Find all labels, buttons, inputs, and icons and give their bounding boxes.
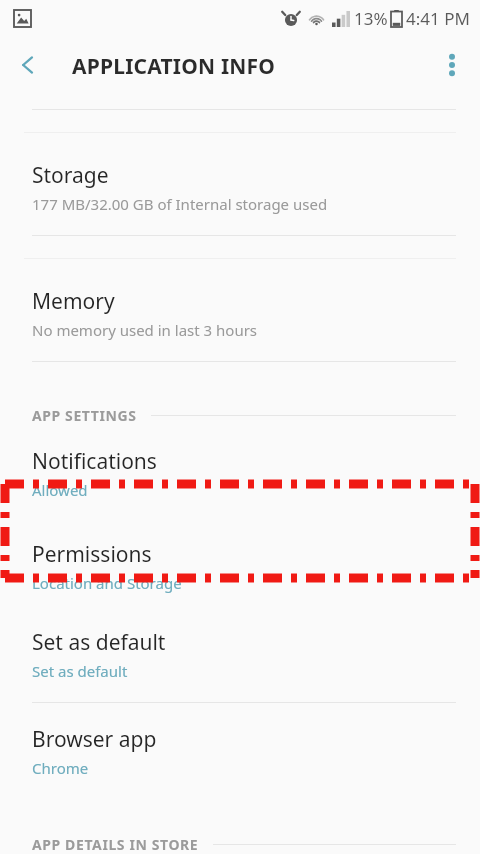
staticText: Permissions (32, 540, 152, 569)
staticText: Browser app (32, 725, 157, 754)
staticText: APPLICATION INFO (72, 52, 276, 81)
button[interactable]: Navigate up (0, 37, 56, 93)
button[interactable]: Notifications (0, 447, 480, 522)
button[interactable]: Permissions (0, 522, 480, 614)
staticText: 177 MB/32.00 GB of Internal storage used (32, 194, 328, 214)
button[interactable]: Browser app (0, 703, 480, 799)
staticText: 13% (354, 7, 388, 30)
staticText: Set as default (32, 628, 166, 657)
button[interactable]: Set as default (0, 614, 480, 702)
staticText: Set as default (32, 661, 128, 681)
staticText: Storage (32, 161, 109, 190)
staticText: Notifications (32, 447, 157, 476)
button[interactable]: Storage (0, 133, 480, 235)
staticText: Chrome (32, 758, 89, 778)
staticText: Memory (32, 287, 115, 316)
staticText: 4:41 PM (406, 7, 470, 30)
staticText: APP DETAILS IN STORE (32, 835, 199, 854)
staticText: No memory used in last 3 hours (32, 320, 258, 340)
staticText: Allowed (32, 480, 88, 500)
staticText: APP SETTINGS (32, 406, 137, 425)
button[interactable]: Memory (0, 259, 480, 361)
staticText: Location and Storage (32, 573, 182, 593)
button[interactable]: More options (424, 37, 480, 93)
